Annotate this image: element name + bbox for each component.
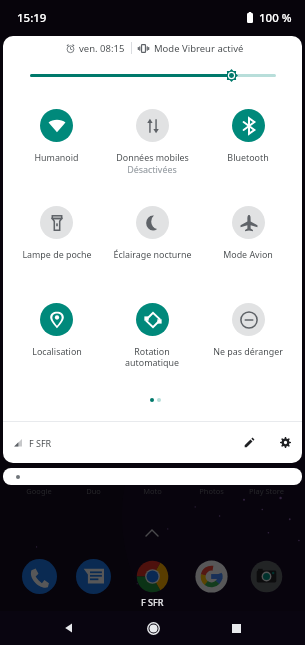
staticText: Photos xyxy=(199,486,224,496)
button[interactable]: Localisation xyxy=(9,299,104,377)
staticText: Mode Avion xyxy=(223,248,273,260)
staticText: Données mobiles xyxy=(116,151,189,163)
staticText: Ne pas déranger xyxy=(213,345,283,357)
button[interactable]: Chrome xyxy=(135,559,170,594)
button[interactable]: Paramètres xyxy=(272,429,298,455)
staticText: Moto xyxy=(143,486,162,496)
button[interactable]: Téléphone xyxy=(22,559,57,594)
button[interactable]: Lampe de poche xyxy=(9,202,104,280)
staticText: Google xyxy=(26,486,52,496)
staticText: Désactivées xyxy=(127,163,177,175)
staticText: Duo xyxy=(86,486,101,496)
staticText: Rotation automatique xyxy=(125,345,179,369)
staticText: Play Store xyxy=(249,486,284,496)
staticText: F SFR xyxy=(141,596,164,608)
button[interactable]: Appareil photo xyxy=(249,559,284,594)
button[interactable]: Ne pas déranger xyxy=(200,299,296,377)
staticText: Lampe de poche xyxy=(22,248,92,260)
button[interactable]: Rotation automatique xyxy=(104,299,200,377)
button[interactable]: Accueil xyxy=(138,613,168,643)
button[interactable]: Messages xyxy=(76,559,111,594)
button[interactable]: Applications récentes xyxy=(221,613,251,643)
button[interactable]: Mode Avion xyxy=(200,202,296,280)
staticText: F SFR xyxy=(29,437,52,449)
staticText: Éclairage nocturne xyxy=(113,248,192,260)
button[interactable]: Google xyxy=(194,559,229,594)
staticText: 15:19 xyxy=(17,10,47,26)
button[interactable]: Données mobiles xyxy=(104,105,200,183)
staticText: Bluetooth xyxy=(227,151,269,163)
staticText: Mode Vibreur activé xyxy=(154,42,244,55)
button[interactable]: Bluetooth xyxy=(200,105,296,183)
staticText: Localisation xyxy=(32,345,82,357)
staticText: Humanoid xyxy=(34,151,79,163)
button[interactable]: Retour xyxy=(54,613,84,643)
staticText: 100 % xyxy=(259,10,292,26)
button[interactable]: Modifier xyxy=(236,429,262,455)
staticText: ven. 08:15 xyxy=(79,42,125,55)
button[interactable]: Humanoid xyxy=(9,105,104,183)
button[interactable]: Éclairage nocturne xyxy=(104,202,200,280)
